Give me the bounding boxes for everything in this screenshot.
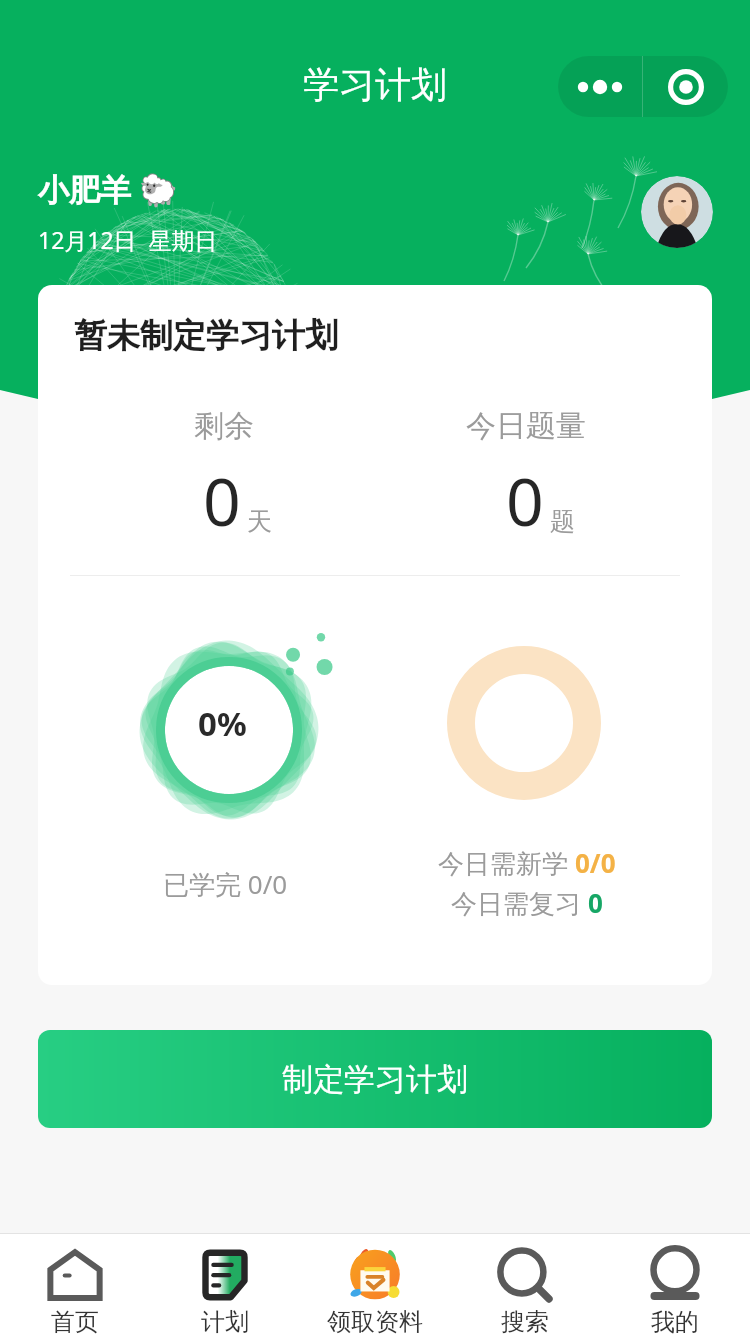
staticText: 首页 [51, 1307, 99, 1334]
button[interactable]: 我的 [600, 1234, 750, 1334]
button[interactable]: 领取资料 [300, 1234, 450, 1334]
button[interactable]: Profile avatar [641, 176, 713, 248]
staticText: 学习计划 [303, 62, 447, 107]
staticText: 0 [203, 455, 241, 545]
button[interactable]: Close mini program [643, 56, 728, 117]
staticText: 我的 [651, 1307, 699, 1334]
staticText: 天 [247, 506, 272, 537]
staticText: 制定学习计划 [282, 1060, 468, 1099]
staticText: 题 [550, 506, 575, 537]
button[interactable]: 计划 [150, 1234, 300, 1334]
staticText: 今日需新学 [438, 845, 575, 881]
staticText: 0 [588, 885, 603, 920]
staticText: 搜索 [501, 1307, 549, 1334]
button[interactable]: 搜索 [450, 1234, 600, 1334]
staticText: 12月12日 星期日 [38, 224, 218, 255]
button[interactable]: More options [558, 56, 642, 117]
staticText: 剩余 [194, 407, 254, 445]
staticText: 计划 [201, 1307, 249, 1334]
button[interactable]: 首页 [0, 1234, 150, 1334]
staticText: 今日题量 [466, 407, 586, 445]
staticText: 0/0 [575, 845, 616, 880]
staticText: 0% [198, 701, 247, 746]
button[interactable]: 制定学习计划 [38, 1030, 712, 1128]
staticText: 已学完 0/0 [163, 866, 288, 902]
staticText: 领取资料 [327, 1307, 423, 1334]
staticText: 暂未制定学习计划 [74, 315, 338, 357]
staticText: 今日需复习 [451, 885, 588, 921]
staticText: 0 [506, 455, 544, 545]
staticText: 小肥羊 🐑 [38, 168, 178, 210]
